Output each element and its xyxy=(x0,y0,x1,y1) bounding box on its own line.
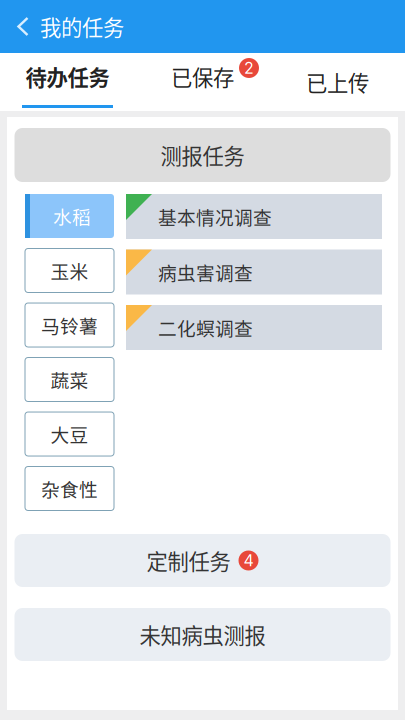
staticText: 水稻 xyxy=(53,202,91,229)
staticText: 基本情况调查 xyxy=(158,203,272,230)
staticText: 蔬菜 xyxy=(50,366,88,393)
staticText: 已保存 xyxy=(171,61,234,92)
staticText: 大豆 xyxy=(50,420,88,447)
button[interactable]: 待办任务 xyxy=(0,53,135,111)
button[interactable]: 病虫害调查 xyxy=(126,249,382,294)
button[interactable]: 已上传 xyxy=(270,53,405,111)
staticText: 玉米 xyxy=(50,257,88,284)
staticText: 杂食性 xyxy=(41,475,98,502)
button[interactable]: 我的任务 xyxy=(0,0,124,53)
button[interactable]: 杂食性 xyxy=(25,466,114,510)
staticText: 马铃薯 xyxy=(41,311,98,338)
button[interactable]: 基本情况调查 xyxy=(126,194,382,239)
button[interactable]: 定制任务 xyxy=(14,534,390,587)
staticText: 二化螟调查 xyxy=(158,314,253,341)
button[interactable]: 二化螟调查 xyxy=(126,305,382,350)
button[interactable]: 马铃薯 xyxy=(25,303,114,347)
staticText: 2 xyxy=(244,58,254,78)
staticText: 测报任务 xyxy=(160,140,244,170)
staticText: 病虫害调查 xyxy=(158,258,253,285)
button[interactable]: 已保存 xyxy=(135,53,270,111)
button[interactable]: 水稻 xyxy=(25,194,114,238)
button[interactable]: 玉米 xyxy=(25,248,114,292)
staticText: 我的任务 xyxy=(40,11,124,42)
button[interactable]: 未知病虫测报 xyxy=(14,608,390,661)
button[interactable]: 蔬菜 xyxy=(25,357,114,401)
staticText: 4 xyxy=(243,551,253,570)
staticText: 已上传 xyxy=(306,67,369,97)
staticText: 定制任务 xyxy=(146,545,230,576)
staticText: 待办任务 xyxy=(25,61,109,92)
staticText: 未知病虫测报 xyxy=(139,619,265,650)
button[interactable]: 大豆 xyxy=(25,412,114,456)
